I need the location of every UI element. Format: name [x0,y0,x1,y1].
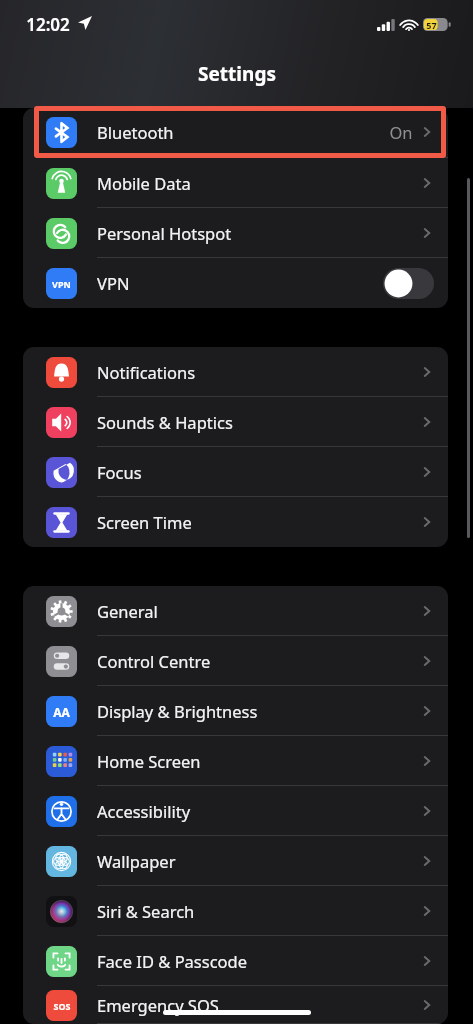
staticText: General [97,600,420,622]
staticText: Notifications [97,361,420,383]
staticText: VPN [97,272,383,294]
button[interactable]: Face ID & Passcode [23,936,448,986]
staticText: On [389,121,413,143]
staticText: Display & Brightness [97,700,420,722]
button[interactable]: Notifications [23,347,448,397]
button[interactable]: Personal Hotspot [23,208,448,258]
staticText: VPN [52,278,71,290]
staticText: 57 [426,19,437,31]
button[interactable]: Screen Time [23,497,448,547]
staticText: Personal Hotspot [97,222,420,244]
staticText: Siri & Search [97,900,420,922]
button[interactable]: Bluetooth [23,108,448,158]
staticText: Emergency SOS [97,994,420,1016]
button[interactable]: Sounds & Haptics [23,397,448,447]
button[interactable]: Bluetooth [23,108,448,156]
staticText: On [389,122,413,144]
staticText: Face ID & Passcode [97,950,420,972]
button[interactable]: Siri & Search [23,886,448,936]
staticText: Mobile Data [97,172,420,194]
button[interactable]: General [23,586,448,636]
staticText: Home Screen [97,750,420,772]
staticText: Control Centre [97,650,420,672]
staticText: SOS [53,1000,71,1012]
button[interactable]: Accessibility [23,786,448,836]
staticText: Bluetooth [97,121,389,143]
staticText: 12:02 [26,13,70,36]
staticText: Focus [97,461,420,483]
button[interactable]: Control Centre [23,636,448,686]
button[interactable]: Home Screen [23,736,448,786]
staticText: Settings [198,61,276,87]
button[interactable]: VPN [23,258,448,308]
button[interactable]: Focus [23,447,448,497]
staticText: Wallpaper [97,850,420,872]
staticText: Accessibility [97,800,420,822]
button[interactable]: AA [23,686,448,736]
other: Location active [78,16,92,30]
button[interactable]: Mobile Data [23,158,448,208]
button[interactable]: SOS [23,986,448,1024]
staticText: Bluetooth [97,122,389,144]
staticText: Screen Time [97,511,420,533]
staticText: AA [53,704,70,720]
button[interactable]: Wallpaper [23,836,448,886]
staticText: Sounds & Haptics [97,411,420,433]
